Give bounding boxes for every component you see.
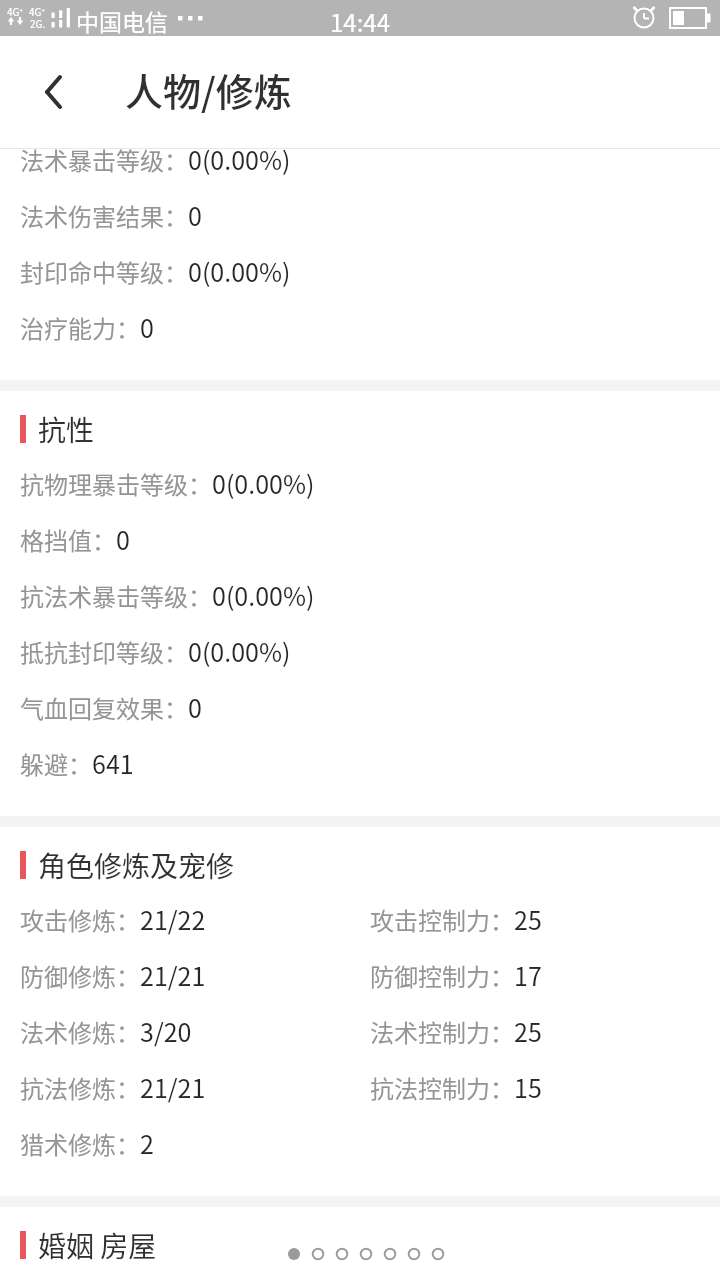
staticText: 法术控制力： — [370, 1014, 514, 1049]
staticText: 14:44 — [330, 4, 390, 39]
staticText: 法术修炼： — [20, 1014, 140, 1049]
staticText: 4G⁺ — [7, 4, 23, 19]
staticText: 25 — [514, 901, 542, 937]
staticText: 0 — [188, 197, 202, 233]
button[interactable]: 格挡值： — [20, 511, 720, 567]
button[interactable]: 抗物理暴击等级： — [20, 455, 720, 511]
button[interactable]: 抗性 — [0, 401, 720, 457]
staticText: 中国电信 — [76, 4, 168, 37]
staticText: 猎术修炼： — [20, 1126, 140, 1161]
button[interactable]: 防御控制力： — [370, 947, 700, 1003]
button[interactable]: 法术控制力： — [370, 1003, 700, 1059]
staticText: 0(0.00%) — [188, 633, 291, 669]
staticText: 2G. — [30, 16, 46, 30]
staticText: 4G⁺ — [29, 4, 45, 19]
staticText: 角色修炼及宠修 — [38, 845, 235, 886]
staticText: 法术伤害结果： — [20, 198, 188, 233]
button[interactable]: 攻击控制力： — [370, 891, 700, 947]
staticText: 0 — [140, 309, 154, 345]
staticText: 25 — [514, 1013, 542, 1049]
staticText: 抗物理暴击等级： — [20, 466, 212, 501]
button[interactable]: 法术修炼： — [20, 1003, 360, 1059]
staticText: 17 — [514, 957, 542, 993]
staticText: 0 — [116, 521, 130, 557]
staticText: 2 — [140, 1125, 154, 1161]
button[interactable]: 气血回复效果： — [20, 679, 720, 735]
staticText: 防御控制力： — [370, 958, 514, 993]
staticText: 攻击控制力： — [370, 902, 514, 937]
staticText: 抗法修炼： — [20, 1070, 140, 1105]
staticText: 抗法术暴击等级： — [20, 578, 212, 613]
staticText: 防御修炼： — [20, 958, 140, 993]
button[interactable]: 婚姻 房屋 — [0, 1217, 720, 1273]
staticText: 0 — [188, 689, 202, 725]
button[interactable]: 抵抗封印等级： — [20, 623, 720, 679]
staticText: 3/20 — [140, 1013, 192, 1049]
staticText: 抵抗封印等级： — [20, 634, 188, 669]
button[interactable]: 抗法术暴击等级： — [20, 567, 720, 623]
button[interactable]: 抗法修炼： — [20, 1059, 360, 1115]
staticText: 0(0.00%) — [188, 253, 291, 289]
staticText: 人物/修炼 — [125, 62, 292, 117]
staticText: 21/21 — [140, 1069, 206, 1105]
button[interactable]: 治疗能力： — [20, 299, 720, 355]
staticText: 治疗能力： — [20, 310, 140, 345]
button[interactable]: 躲避： — [20, 735, 720, 791]
staticText: 0(0.00%) — [212, 577, 315, 613]
button[interactable]: 法术伤害结果： — [20, 187, 720, 243]
staticText: 15 — [514, 1069, 542, 1105]
button[interactable]: 角色修炼及宠修 — [0, 837, 720, 893]
staticText: 0(0.00%) — [212, 465, 315, 501]
staticText: 法术暴击等级： — [20, 142, 188, 177]
staticText: 641 — [92, 745, 134, 781]
staticText: 躲避： — [20, 746, 92, 781]
staticText: 婚姻 房屋 — [38, 1225, 157, 1266]
staticText: 21/22 — [140, 901, 206, 937]
staticText: 21/21 — [140, 957, 206, 993]
staticText: 0(0.00%) — [188, 141, 291, 177]
staticText: 抗法控制力： — [370, 1070, 514, 1105]
staticText: 格挡值： — [20, 522, 116, 557]
button[interactable]: 防御修炼： — [20, 947, 360, 1003]
button[interactable]: Page indicator — [280, 1242, 460, 1266]
staticText: 攻击修炼： — [20, 902, 140, 937]
staticText: 封印命中等级： — [20, 254, 188, 289]
button[interactable]: 攻击修炼： — [20, 891, 360, 947]
button[interactable]: Back — [29, 68, 77, 116]
button[interactable]: 猎术修炼： — [20, 1115, 360, 1171]
button[interactable]: 抗法控制力： — [370, 1059, 700, 1115]
staticText: 气血回复效果： — [20, 690, 188, 725]
button[interactable]: 法术暴击等级： — [20, 131, 720, 187]
button[interactable]: 封印命中等级： — [20, 243, 720, 299]
staticText: 抗性 — [38, 409, 95, 450]
